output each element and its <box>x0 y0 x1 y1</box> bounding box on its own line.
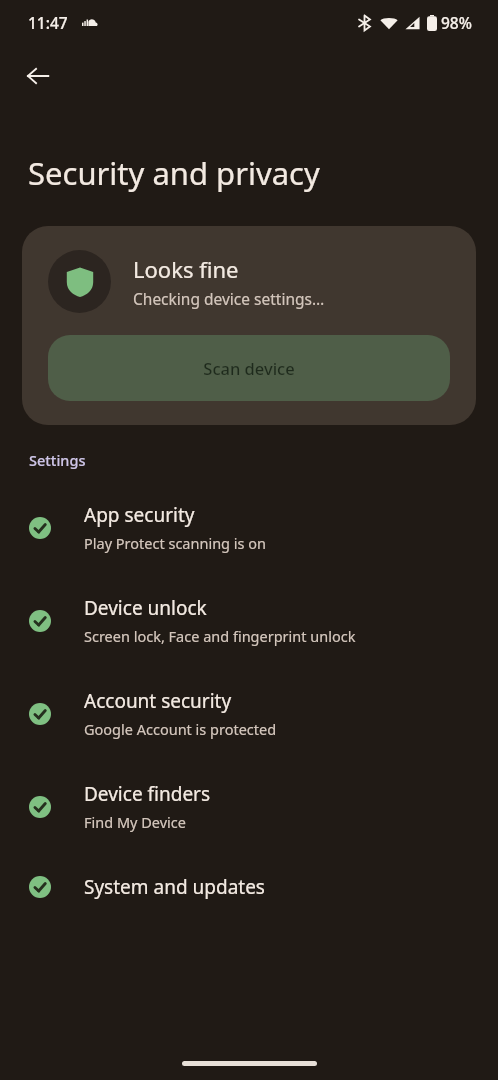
button[interactable]: Looks fine <box>22 226 476 425</box>
staticText: Looks fine <box>133 254 239 284</box>
staticText: Google Account is protected <box>84 719 277 739</box>
staticText: 98% <box>441 12 472 33</box>
button[interactable]: Device unlock <box>0 589 498 652</box>
staticText: Checking device settings… <box>133 288 325 309</box>
staticText: Play Protect scanning is on <box>84 533 266 553</box>
staticText: Security and privacy <box>28 152 320 194</box>
staticText: Screen lock, Face and fingerprint unlock <box>84 626 356 646</box>
button[interactable]: Device finders <box>0 775 498 838</box>
button[interactable]: Back <box>14 52 62 100</box>
staticText: Device finders <box>84 781 211 807</box>
staticText: Device unlock <box>84 595 207 621</box>
staticText: Account security <box>84 688 232 714</box>
staticText: 11:47 <box>28 12 68 33</box>
staticText: Settings <box>29 450 86 470</box>
staticText: System and updates <box>84 874 265 900</box>
staticText: App security <box>84 502 195 528</box>
button[interactable]: Scan device <box>48 335 450 401</box>
staticText: Find My Device <box>84 812 186 832</box>
button[interactable]: System and updates <box>0 868 498 906</box>
button[interactable]: Account security <box>0 682 498 745</box>
button[interactable]: App security <box>0 496 498 559</box>
staticText: Scan device <box>203 357 295 379</box>
